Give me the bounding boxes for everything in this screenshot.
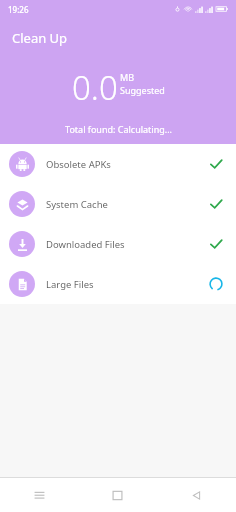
staticText: MB <box>120 71 135 83</box>
button[interactable]: Downloaded Files <box>0 224 236 264</box>
staticText: Obsolete APKs <box>46 158 111 171</box>
button[interactable]: Obsolete APKs <box>0 144 236 184</box>
button[interactable]: Home <box>78 478 157 512</box>
button[interactable]: System Cache <box>0 184 236 224</box>
staticText: Downloaded Files <box>46 238 125 251</box>
button[interactable]: Recent apps <box>0 478 78 512</box>
staticText: Total found: Calculating... <box>65 123 172 135</box>
staticText: Clean Up <box>12 29 68 47</box>
button[interactable]: Back <box>157 478 236 512</box>
staticText: Suggested <box>120 84 165 96</box>
staticText: Large Files <box>46 278 94 291</box>
button[interactable]: Large Files <box>0 264 236 304</box>
staticText: System Cache <box>46 198 108 211</box>
staticText: 19:26 <box>8 4 29 15</box>
staticText: 0.0 <box>72 65 118 110</box>
